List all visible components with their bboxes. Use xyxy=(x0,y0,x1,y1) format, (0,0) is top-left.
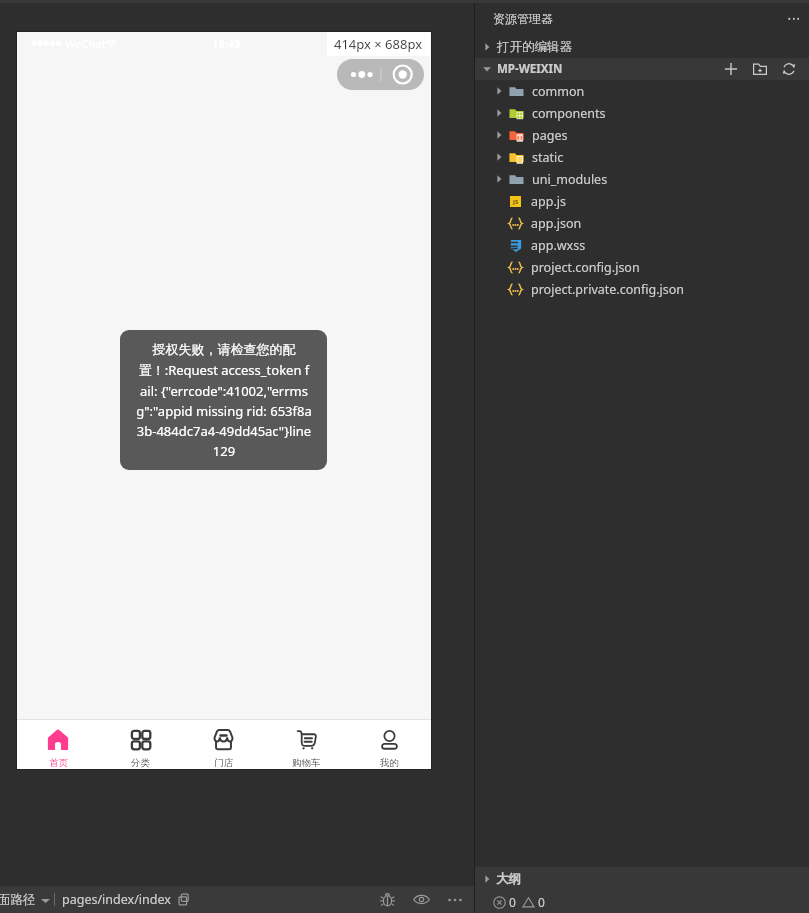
staticText: 414px × 688px xyxy=(334,35,423,53)
staticText: app.wxss xyxy=(531,237,586,254)
staticText: static xyxy=(532,149,564,166)
staticText: app.json xyxy=(531,215,582,232)
button[interactable]: 购物车 xyxy=(265,720,348,769)
button[interactable]: 分类 xyxy=(99,720,182,769)
button[interactable]: JS xyxy=(475,190,809,212)
staticText: pages/index/index xyxy=(62,891,171,908)
button[interactable]: static xyxy=(475,146,809,168)
button[interactable]: 首页 xyxy=(17,720,99,769)
button[interactable]: 门店 xyxy=(182,720,265,769)
staticText: 18:49 xyxy=(212,36,241,51)
staticText: 大纲 xyxy=(496,871,521,887)
button[interactable]: 大纲 xyxy=(475,867,809,891)
staticText: JS xyxy=(513,198,519,206)
staticText: 购物车 xyxy=(292,757,321,769)
staticText: WeChat xyxy=(65,36,106,51)
staticText: 0 xyxy=(509,894,516,910)
button[interactable]: uni_modules xyxy=(475,168,809,190)
button[interactable]: ⋯ xyxy=(787,10,801,26)
button[interactable]: Debug xyxy=(379,891,396,908)
button[interactable]: 我的 xyxy=(348,720,431,769)
staticText: MP-WEIXIN xyxy=(497,61,563,77)
staticText: 门店 xyxy=(214,757,233,769)
staticText: project.private.config.json xyxy=(531,281,685,298)
button[interactable]: pages/index/index xyxy=(62,891,191,908)
button[interactable]: project.private.config.json xyxy=(475,278,809,300)
staticText: project.config.json xyxy=(531,259,640,276)
staticText: 0 xyxy=(538,894,545,910)
other: Copy xyxy=(178,893,191,906)
button[interactable]: MP-WEIXIN xyxy=(475,58,809,80)
staticText: 打开的编辑器 xyxy=(497,39,572,55)
button[interactable]: 打开的编辑器 xyxy=(475,36,809,58)
button[interactable]: More xyxy=(337,59,424,90)
staticText: 首页 xyxy=(49,757,68,769)
staticText: 资源管理器 xyxy=(493,11,553,26)
staticText: common xyxy=(532,83,585,100)
staticText: 授权失败，请检查您的配 置！:Request access_token f ai… xyxy=(136,341,312,460)
button[interactable]: project.config.json xyxy=(475,256,809,278)
button[interactable]: New folder xyxy=(752,61,768,77)
button[interactable]: pages xyxy=(475,124,809,146)
button[interactable]: common xyxy=(475,80,809,102)
staticText: app.js xyxy=(531,193,566,210)
button[interactable]: components xyxy=(475,102,809,124)
button[interactable]: 面路径 xyxy=(0,890,50,910)
staticText: components xyxy=(532,105,606,122)
staticText: 分类 xyxy=(131,757,150,769)
button[interactable]: Refresh xyxy=(781,61,797,77)
staticText: uni_modules xyxy=(532,171,608,188)
staticText: 面路径 xyxy=(0,892,36,908)
staticText: 我的 xyxy=(380,757,399,769)
button[interactable]: More xyxy=(447,892,463,908)
button[interactable]: app.wxss xyxy=(475,234,809,256)
button[interactable]: app.json xyxy=(475,212,809,234)
staticText: ●●●●● xyxy=(31,39,62,47)
staticText: pages xyxy=(532,127,568,144)
button[interactable]: Preview xyxy=(413,891,430,908)
button[interactable]: New file xyxy=(723,61,739,77)
